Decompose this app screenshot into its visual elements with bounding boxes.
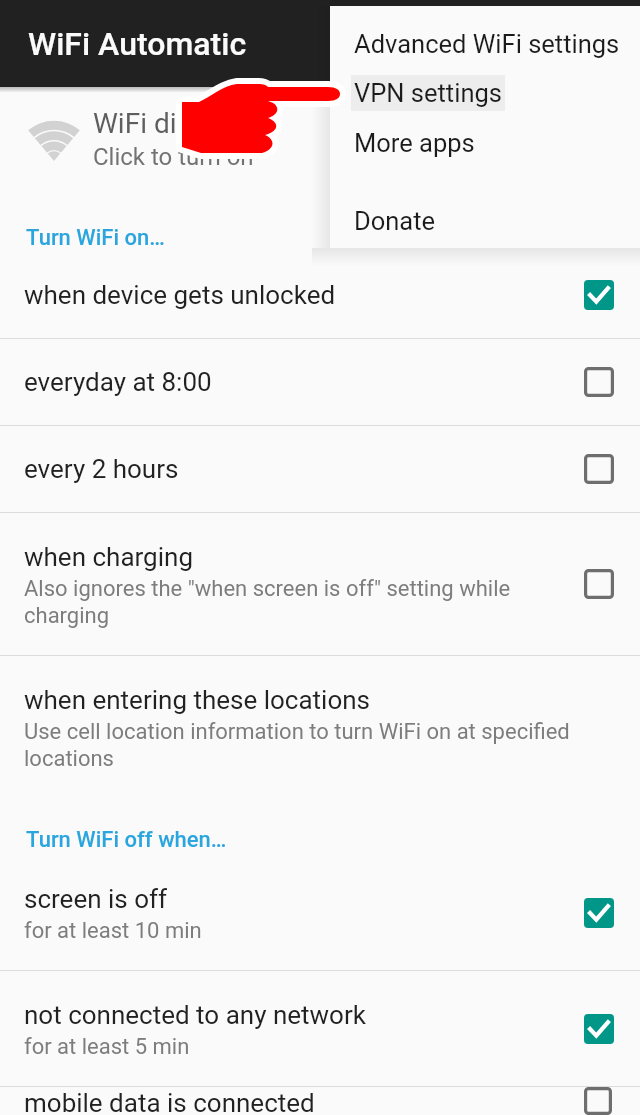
staticText: everyday at 8:00 bbox=[24, 366, 212, 398]
staticText: when device gets unlocked bbox=[24, 279, 336, 311]
button[interactable]: when charging bbox=[0, 513, 640, 655]
button[interactable] bbox=[557, 855, 640, 970]
staticText: for at least 5 min bbox=[24, 1033, 190, 1060]
staticText: VPN settings bbox=[354, 78, 502, 108]
staticText: Use cell location information to turn Wi… bbox=[24, 718, 582, 772]
button[interactable]: when entering these locations bbox=[0, 656, 640, 798]
staticText: when charging bbox=[24, 541, 193, 573]
button[interactable]: More apps bbox=[330, 118, 640, 168]
staticText: Click to turn on bbox=[93, 140, 254, 172]
button[interactable]: not connected to any network bbox=[0, 971, 640, 1086]
staticText: Also ignores the "when screen is off" se… bbox=[24, 575, 517, 629]
button[interactable]: Advanced WiFi settings bbox=[330, 20, 640, 68]
button[interactable]: mobile data is connected bbox=[0, 1087, 640, 1115]
button[interactable] bbox=[557, 252, 640, 338]
button[interactable] bbox=[557, 1087, 640, 1115]
staticText: not connected to any network bbox=[24, 999, 366, 1031]
staticText: Advanced WiFi settings bbox=[354, 29, 620, 59]
button[interactable]: every 2 hours bbox=[0, 426, 640, 512]
other: Pointer bbox=[170, 72, 350, 167]
staticText: when entering these locations bbox=[24, 684, 371, 716]
button[interactable]: VPN settings bbox=[330, 68, 640, 118]
staticText: More apps bbox=[354, 128, 475, 158]
button[interactable]: screen is off bbox=[0, 855, 640, 970]
button[interactable]: when device gets unlocked bbox=[0, 252, 640, 338]
staticText: WiFi disabled bbox=[93, 106, 260, 140]
button[interactable] bbox=[557, 513, 640, 655]
button[interactable] bbox=[557, 426, 640, 512]
button[interactable]: everyday at 8:00 bbox=[0, 339, 640, 425]
staticText: WiFi Automatic bbox=[28, 25, 247, 63]
staticText: for at least 10 min bbox=[24, 917, 202, 944]
staticText: Turn WiFi off when… bbox=[26, 827, 227, 853]
staticText: Turn WiFi on… bbox=[26, 225, 165, 251]
button[interactable] bbox=[557, 339, 640, 425]
staticText: every 2 hours bbox=[24, 453, 179, 485]
button[interactable]: Donate bbox=[330, 196, 640, 246]
button[interactable] bbox=[557, 971, 640, 1086]
button[interactable]: WiFi bbox=[0, 92, 640, 193]
other: WiFi bbox=[27, 120, 81, 161]
staticText: Donate bbox=[354, 206, 436, 236]
staticText: screen is off bbox=[24, 883, 168, 915]
staticText: mobile data is connected bbox=[24, 1087, 315, 1115]
